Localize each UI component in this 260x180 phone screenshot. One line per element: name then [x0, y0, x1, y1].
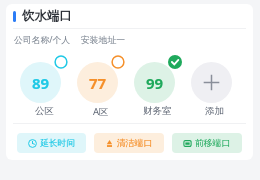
- button[interactable]: 添加端口: [186, 55, 243, 117]
- staticText: 77: [89, 73, 107, 93]
- button[interactable]: 饮水端口: [6, 4, 253, 28]
- staticText: 公司名称/个人: [14, 34, 71, 46]
- button[interactable]: 99: [129, 55, 186, 117]
- staticText: 89: [32, 73, 50, 93]
- staticText: 清洁端口: [117, 138, 153, 149]
- staticText: 财务室: [143, 105, 172, 117]
- button[interactable]: 89: [16, 55, 72, 117]
- staticText: 安装地址一: [81, 35, 125, 46]
- button[interactable]: 延长时间: [17, 133, 86, 153]
- staticText: 饮水端口: [22, 8, 72, 24]
- button[interactable]: 77: [72, 55, 129, 118]
- staticText: 延长时间: [40, 138, 76, 149]
- staticText: 前移端口: [195, 138, 231, 149]
- staticText: 99: [146, 73, 164, 93]
- button[interactable]: 清洁端口: [94, 133, 164, 153]
- staticText: A区: [93, 105, 109, 118]
- button[interactable]: 前移端口: [172, 133, 242, 153]
- staticText: 添加: [205, 105, 224, 117]
- staticText: 公区: [35, 105, 54, 117]
